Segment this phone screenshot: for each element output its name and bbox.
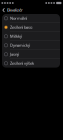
button[interactable]: Zesílení výšek	[2, 59, 60, 68]
staticText: Zesílení výšek	[10, 61, 34, 66]
button[interactable]: Back	[0, 6, 7, 14]
button[interactable]: Jasný	[2, 50, 60, 59]
staticText: Ekvalizér	[7, 7, 23, 13]
staticText: Dynamický	[10, 43, 30, 48]
staticText: Jasný	[10, 52, 19, 57]
button[interactable]: Zesílení basů	[2, 23, 60, 32]
button[interactable]: Měkký	[2, 32, 60, 41]
button[interactable]: Normální	[2, 14, 60, 23]
staticText: Normální	[10, 16, 27, 21]
staticText: Měkký	[10, 34, 22, 39]
staticText: Zesílení basů	[10, 25, 32, 30]
button[interactable]: Dynamický	[2, 41, 60, 50]
